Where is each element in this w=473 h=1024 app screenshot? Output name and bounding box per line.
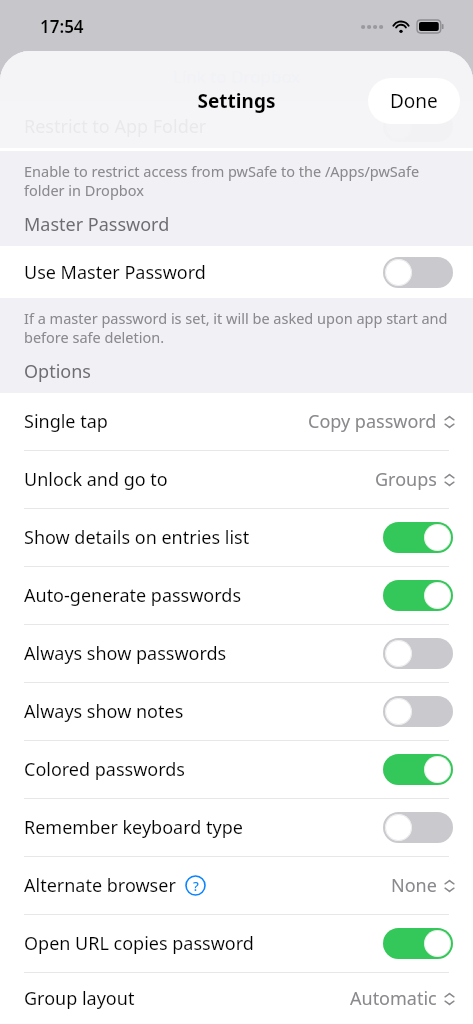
button[interactable]: Use Master Password [0,246,473,298]
button[interactable]: Remember keyboard type [0,799,473,856]
staticText: Copy password [308,409,437,434]
staticText: 17:54 [40,15,84,38]
staticText: Remember keyboard type [24,815,243,840]
button[interactable]: Off [383,812,453,843]
button[interactable]: Open URL copies password [0,915,473,972]
staticText: Open URL copies password [24,931,254,956]
button[interactable]: Colored passwords [0,741,473,798]
button[interactable]: Off [383,638,453,669]
button[interactable]: Help about alternate browser [185,875,206,896]
button[interactable]: On [383,928,453,959]
staticText: Always show passwords [24,641,227,666]
staticText: Show details on entries list [24,525,250,550]
staticText: Always show notes [24,699,184,724]
staticText: ? [193,877,199,895]
staticText: None [391,873,437,898]
staticText: Auto-generate passwords [24,583,242,608]
staticText: Unlock and go to [24,467,168,492]
button[interactable]: Group layout [0,973,473,1024]
button[interactable]: Restrict to App Folder [0,101,473,151]
button[interactable]: Always show notes [0,683,473,740]
button[interactable]: Auto-generate passwords [0,567,473,624]
staticText: Use Master Password [24,260,206,285]
button[interactable]: On [383,580,453,611]
staticText: Single tap [24,409,108,434]
staticText: Restrict to App Folder [24,114,207,139]
staticText: Groups [375,467,437,492]
staticText: Master Password [24,212,170,237]
staticText: If a master password is set, it will be … [24,308,457,347]
button[interactable]: Alternate browser [0,857,473,914]
staticText: Colored passwords [24,757,185,782]
button[interactable]: On [383,522,453,553]
button[interactable]: On [383,754,453,785]
button[interactable]: Done [368,78,460,124]
staticText: Options [24,359,91,384]
button[interactable]: Off [383,257,453,288]
staticText: Enable to restrict access from pwSafe to… [24,161,457,200]
button[interactable]: Off [383,696,453,727]
staticText: Settings [0,88,473,114]
button[interactable]: Always show passwords [0,625,473,682]
staticText: Done [390,88,438,114]
button[interactable]: Unlock and go to [0,451,473,508]
button[interactable]: Off [383,111,453,142]
staticText: Group layout [24,986,135,1011]
button[interactable]: Single tap [0,393,473,450]
staticText: Automatic [350,986,437,1011]
staticText: Alternate browser [24,873,176,898]
button[interactable]: Show details on entries list [0,509,473,566]
